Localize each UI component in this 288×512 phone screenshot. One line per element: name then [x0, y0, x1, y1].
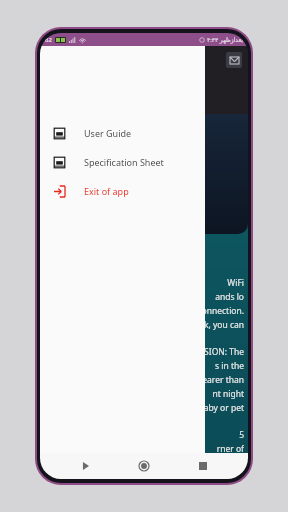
staticText: k, you can: [203, 319, 244, 331]
staticText: 62: [45, 36, 52, 44]
staticText: 5: [239, 429, 244, 441]
staticText: ands lo: [215, 291, 244, 303]
button[interactable]: Recent apps: [190, 453, 216, 479]
staticText: بعدازظهر ۴:۳۳: [207, 36, 243, 44]
button[interactable]: User Guide: [40, 118, 205, 147]
button[interactable]: Specification Sheet: [40, 147, 205, 176]
button[interactable]: Home: [131, 453, 157, 479]
staticText: connection.: [197, 305, 244, 317]
staticText: aby or pet: [203, 402, 244, 414]
staticText: Exit of app: [84, 185, 129, 197]
staticText: earer than: [202, 374, 244, 386]
button[interactable]: Exit of app: [40, 176, 205, 205]
staticText: nt night: [212, 388, 244, 400]
staticText: WiFi: [227, 277, 244, 289]
staticText: rner of: [216, 443, 244, 452]
button[interactable]: Messages: [226, 52, 242, 68]
staticText: s in the: [214, 360, 244, 372]
staticText: SION: The: [204, 346, 244, 358]
staticText: Specification Sheet: [84, 156, 164, 168]
button[interactable]: Back: [73, 453, 99, 479]
staticText: User Guide: [84, 127, 132, 139]
